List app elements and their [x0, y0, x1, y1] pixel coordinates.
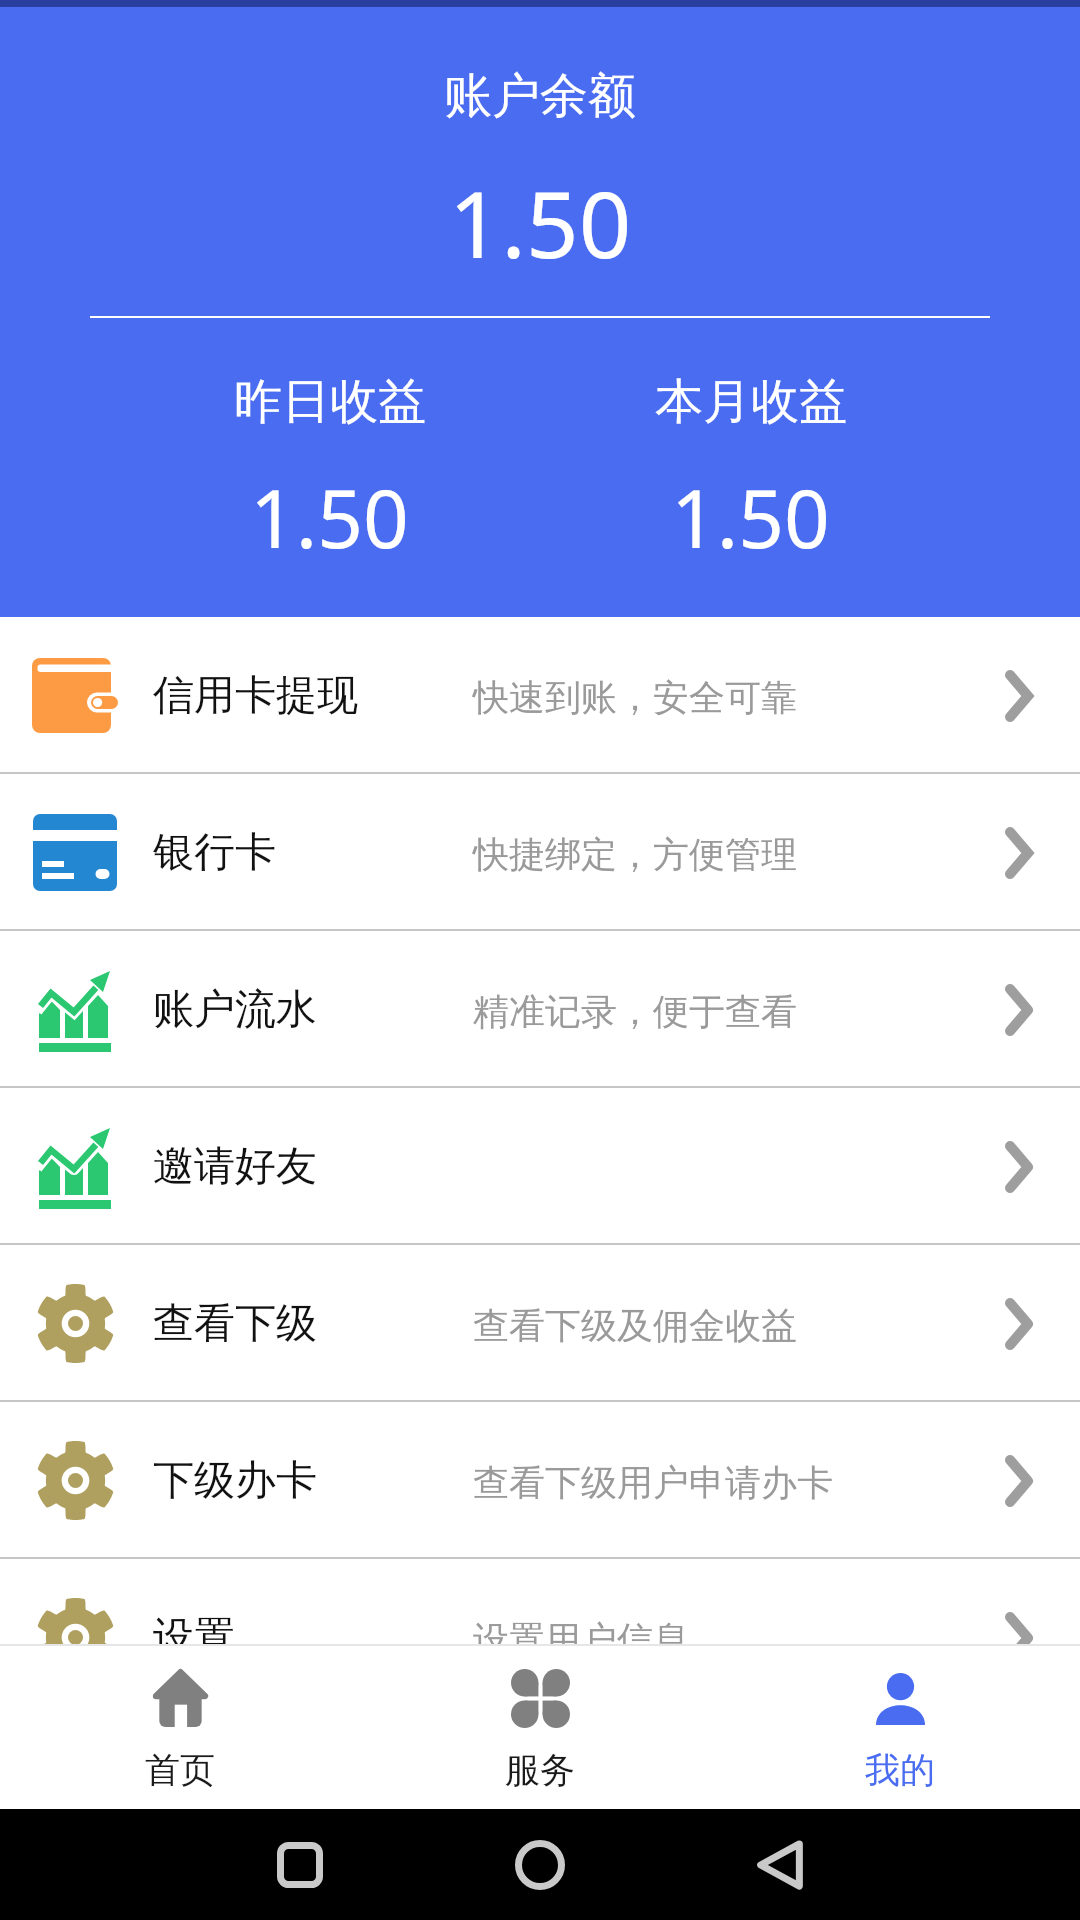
staticText: 查看下级 — [153, 1298, 317, 1350]
staticText: 查看下级用户申请办卡 — [473, 1460, 833, 1505]
button[interactable]: 银行卡 — [0, 774, 1080, 931]
staticText: 精准记录，便于查看 — [473, 989, 797, 1034]
staticText: 下级办卡 — [153, 1455, 317, 1507]
staticText: 查看下级及佣金收益 — [473, 1303, 797, 1348]
staticText: 昨日收益 — [234, 372, 426, 432]
staticText: 服务 — [505, 1748, 575, 1792]
staticText: 1.50 — [671, 462, 830, 571]
button[interactable]: Recent apps — [240, 1809, 360, 1920]
button[interactable]: Back — [720, 1809, 840, 1920]
button[interactable]: Home — [480, 1809, 600, 1920]
staticText: 设置用户信息 — [473, 1617, 689, 1662]
staticText: 快捷绑定，方便管理 — [473, 832, 797, 877]
button[interactable]: 设置 — [0, 1559, 1080, 1716]
button[interactable]: 信用卡提现 — [0, 617, 1080, 774]
staticText: 银行卡 — [153, 827, 276, 879]
button[interactable]: 邀请好友 — [0, 1088, 1080, 1245]
staticText: 账户流水 — [153, 984, 317, 1036]
staticText: 快速到账，安全可靠 — [473, 675, 797, 720]
staticText: 1.50 — [0, 160, 1080, 285]
button[interactable]: 我的 — [720, 1646, 1080, 1809]
staticText: 账户余额 — [0, 66, 1080, 126]
button[interactable]: 下级办卡 — [0, 1402, 1080, 1559]
button[interactable]: 服务 — [360, 1646, 720, 1809]
button[interactable]: 查看下级 — [0, 1245, 1080, 1402]
staticText: 设置 — [153, 1612, 235, 1664]
staticText: 邀请好友 — [153, 1141, 317, 1193]
staticText: 本月收益 — [655, 372, 847, 432]
button[interactable]: 账户流水 — [0, 931, 1080, 1088]
staticText: 我的 — [865, 1748, 935, 1792]
button[interactable]: 首页 — [0, 1646, 360, 1809]
staticText: 首页 — [145, 1748, 215, 1792]
staticText: 信用卡提现 — [153, 670, 358, 722]
staticText: 1.50 — [250, 462, 409, 571]
